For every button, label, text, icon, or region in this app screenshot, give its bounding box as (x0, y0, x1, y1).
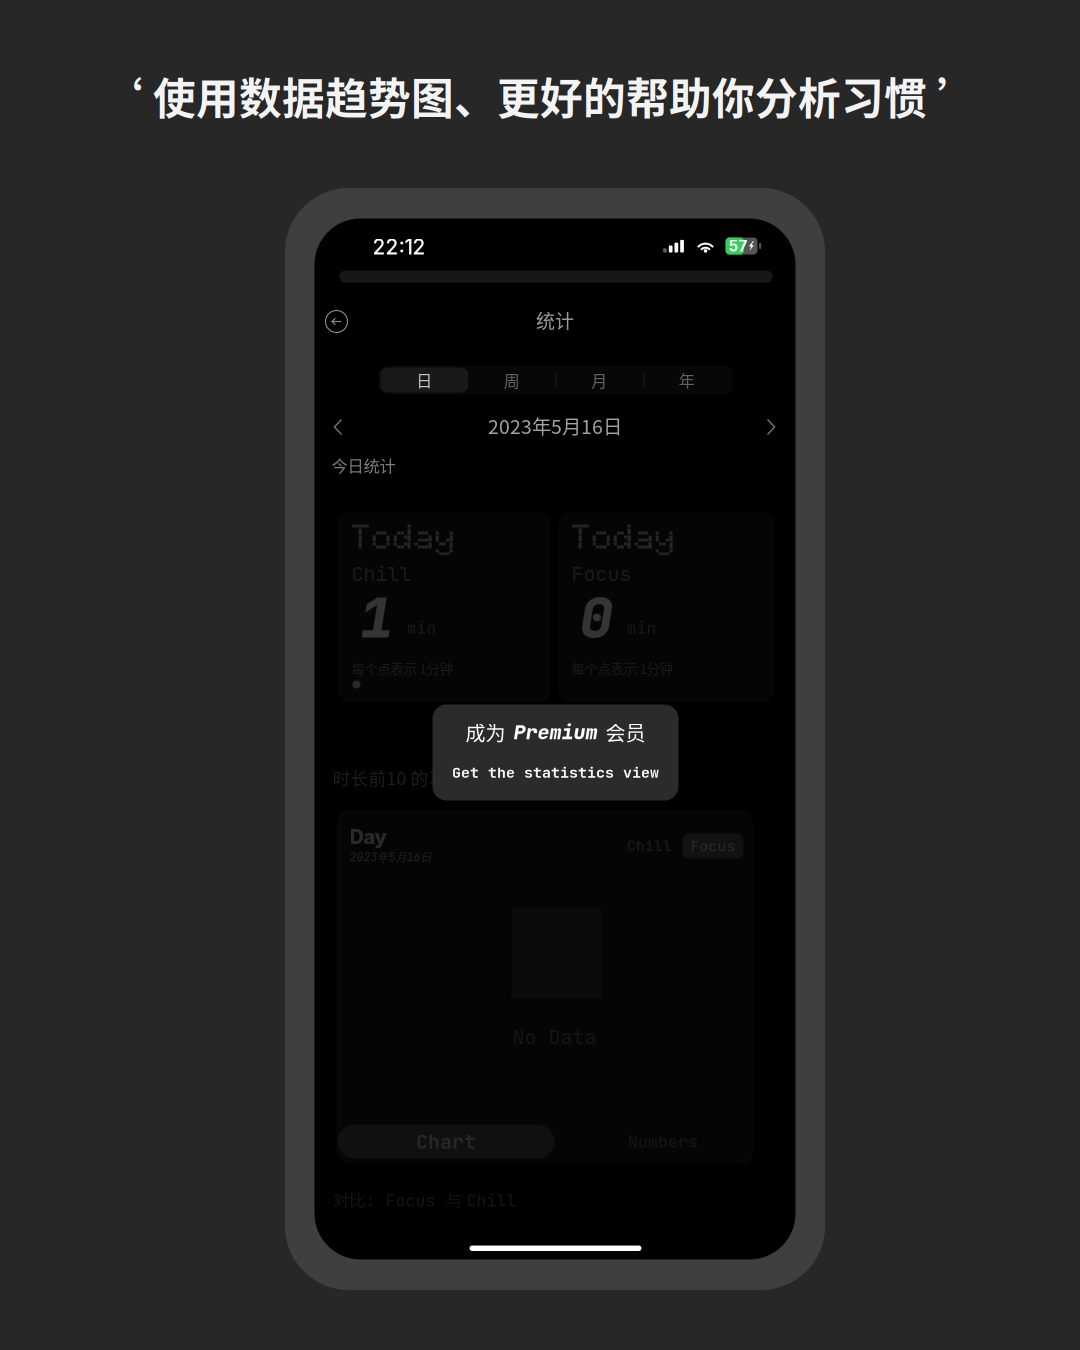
staticText: 日 (416, 368, 432, 392)
staticText: 统计 (536, 306, 574, 334)
button[interactable]: Focus (682, 833, 743, 858)
button[interactable]: Next day (767, 419, 775, 434)
staticText: No Data (512, 1023, 596, 1050)
staticText: 1 (359, 580, 393, 654)
staticText: 22:12 (372, 234, 425, 259)
staticText: Today (571, 515, 676, 557)
staticText: 2023年5月16日 (349, 849, 431, 865)
staticText: min (406, 617, 436, 639)
staticText: Get the statistics view (452, 762, 659, 782)
staticText: Chart (416, 1128, 476, 1155)
staticText: 今日统计 (331, 453, 395, 477)
staticText: 月 (591, 368, 607, 392)
staticText: Focus (571, 560, 631, 587)
staticText: 每个点表示 1分钟 (571, 658, 672, 678)
staticText: Day (349, 824, 386, 849)
button[interactable]: Back (325, 310, 347, 332)
staticText: Today (351, 515, 456, 557)
staticText: 57 (728, 237, 747, 255)
staticText: 成为 (465, 717, 505, 746)
button[interactable]: 周 (468, 367, 555, 392)
staticText: min (626, 617, 656, 639)
button[interactable]: Chart (337, 1124, 554, 1158)
button[interactable]: 日 (380, 367, 468, 392)
staticText: 对比: Focus 与 Chill (333, 1189, 516, 1211)
staticText: 2023年5月16日 (488, 411, 622, 439)
button[interactable]: 年 (643, 367, 730, 392)
button[interactable]: Chill (623, 833, 675, 857)
staticText: ‘ 使用数据趋势图、更好的帮助你分析习惯 ’ (100, 65, 980, 127)
staticText: 周 (504, 368, 520, 392)
button[interactable]: Previous day (333, 419, 341, 434)
staticText: Premium (513, 719, 597, 745)
staticText: 0 (579, 580, 613, 654)
staticText: 年 (679, 368, 695, 392)
button[interactable]: 月 (555, 367, 643, 392)
staticText: Chill (351, 560, 411, 587)
staticText: 每个点表示 1分钟 (351, 658, 452, 678)
staticText: Focus (690, 836, 735, 856)
staticText: 时长前10 的习惯 (332, 764, 464, 790)
staticText: Numbers (628, 1131, 698, 1152)
staticText: 会员 (605, 717, 645, 746)
staticText: Chill (627, 836, 672, 855)
